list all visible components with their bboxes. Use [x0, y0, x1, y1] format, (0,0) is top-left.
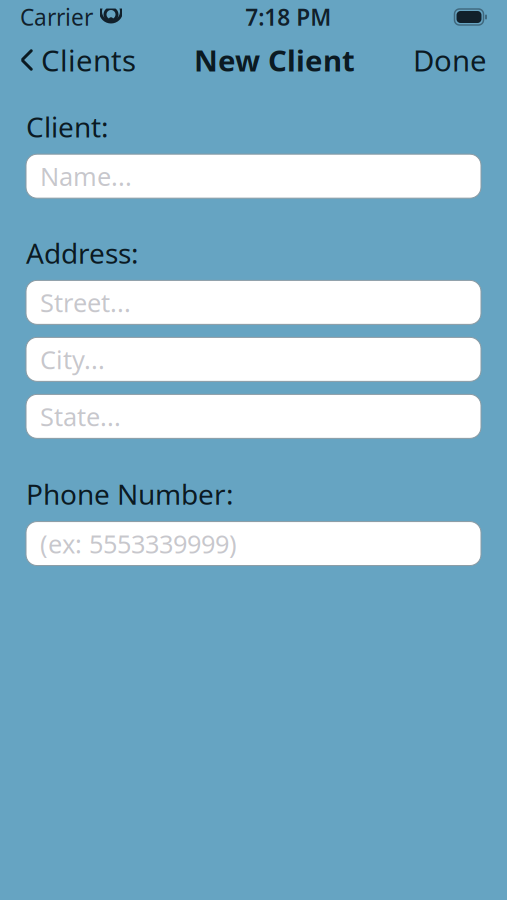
staticText: Done	[413, 40, 487, 79]
staticText: State...	[40, 399, 121, 433]
button[interactable]: Done	[399, 38, 501, 82]
button[interactable]: (ex: 5553339999)	[26, 521, 481, 565]
staticText: New Client	[194, 40, 355, 79]
button[interactable]: Clients	[6, 38, 150, 82]
button[interactable]: Street...	[26, 280, 481, 324]
staticText: Address:	[26, 234, 139, 271]
staticText: 7:18 PM	[245, 2, 331, 32]
staticText: Carrier	[20, 2, 93, 32]
staticText: (ex: 5553339999)	[40, 527, 237, 560]
staticText: Clients	[41, 40, 136, 79]
staticText: Client:	[26, 108, 109, 145]
staticText: Name...	[40, 159, 132, 193]
staticText: City...	[40, 342, 105, 376]
staticText: Street...	[40, 285, 131, 319]
staticText: Phone Number:	[26, 475, 234, 513]
button[interactable]: Name...	[26, 154, 481, 198]
button[interactable]: State...	[26, 394, 481, 438]
button[interactable]: City...	[26, 337, 481, 381]
